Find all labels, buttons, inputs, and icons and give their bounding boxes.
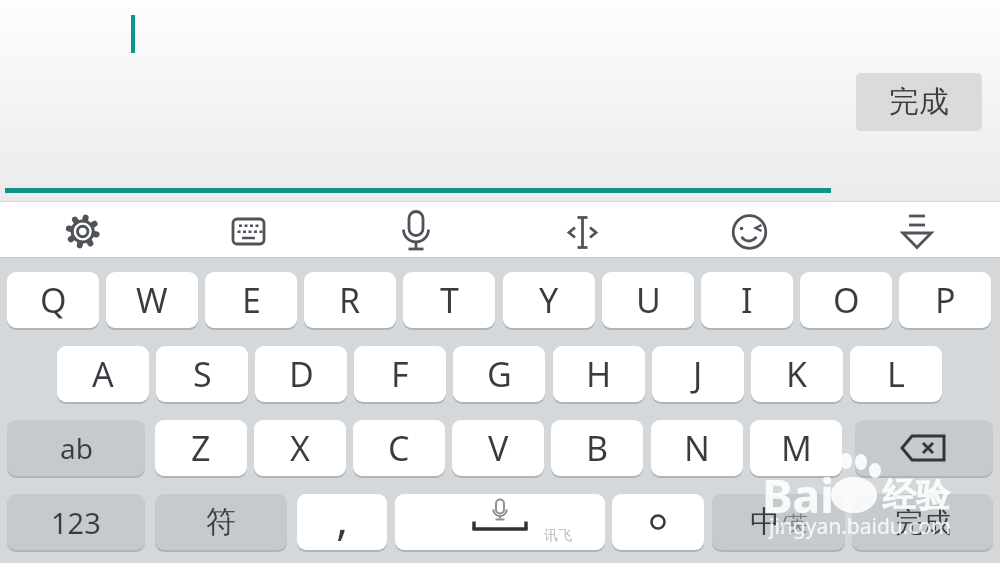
button[interactable]: ,	[297, 494, 387, 550]
button[interactable]: W	[106, 272, 198, 328]
button[interactable]	[612, 494, 704, 550]
button[interactable]: R	[304, 272, 396, 328]
button[interactable]: E	[205, 272, 297, 328]
button[interactable]: X	[254, 420, 346, 476]
staticText: X	[290, 425, 310, 471]
button[interactable]	[855, 420, 993, 476]
button[interactable]: 完成	[856, 73, 982, 131]
staticText: C	[388, 425, 410, 471]
button[interactable]: 完成	[852, 494, 993, 550]
button[interactable]	[332, 202, 499, 258]
button[interactable]: U	[602, 272, 694, 328]
staticText: N	[684, 425, 710, 471]
staticText: Z	[191, 425, 211, 471]
button[interactable]: J	[652, 346, 744, 402]
staticText: O	[833, 277, 860, 323]
staticText: W	[136, 277, 168, 323]
button[interactable]: F	[354, 346, 446, 402]
staticText: G	[487, 351, 512, 397]
button[interactable]: ab	[7, 420, 145, 476]
button[interactable]: S	[156, 346, 248, 402]
staticText: 讯飞	[544, 527, 572, 545]
staticText: I	[741, 277, 753, 323]
button[interactable]: T	[403, 272, 495, 328]
button[interactable]: A	[57, 346, 149, 402]
button[interactable]: H	[553, 346, 645, 402]
staticText: D	[289, 351, 314, 397]
staticText: 经验	[882, 474, 950, 517]
button[interactable]: O	[800, 272, 892, 328]
staticText: T	[440, 277, 459, 323]
staticText: J	[693, 351, 703, 397]
staticText: L	[887, 351, 905, 397]
button[interactable]	[0, 202, 166, 258]
staticText: A	[92, 351, 114, 397]
button[interactable]: K	[751, 346, 843, 402]
staticText: /英	[780, 509, 808, 536]
button[interactable]	[166, 202, 332, 258]
button[interactable]: N	[651, 420, 743, 476]
staticText: S	[193, 351, 212, 397]
staticText: Q	[40, 277, 67, 323]
staticText: V	[488, 425, 509, 471]
staticText: F	[391, 351, 409, 397]
staticText: 完成	[889, 83, 949, 121]
button[interactable]: 中	[712, 494, 845, 550]
button[interactable]: Z	[155, 420, 247, 476]
button[interactable]: D	[255, 346, 347, 402]
button[interactable]	[833, 202, 1000, 258]
button[interactable]: Y	[503, 272, 595, 328]
staticText: 中	[750, 503, 780, 541]
staticText: U	[636, 277, 661, 323]
staticText: R	[339, 277, 361, 323]
button[interactable]: 123	[7, 494, 145, 550]
button[interactable]: G	[453, 346, 545, 402]
button[interactable]: V	[452, 420, 544, 476]
staticText: Bai	[762, 464, 834, 527]
staticText: B	[586, 425, 609, 471]
staticText: K	[786, 351, 808, 397]
button[interactable]: B	[551, 420, 643, 476]
button[interactable]: C	[353, 420, 445, 476]
staticText: 123	[51, 503, 101, 542]
staticText: M	[781, 425, 812, 471]
staticText: jingyan.baidu.com	[769, 512, 951, 541]
staticText: 完成	[895, 505, 951, 540]
staticText: Y	[539, 277, 559, 323]
button[interactable]: M	[750, 420, 842, 476]
button[interactable]: 讯飞	[395, 494, 605, 550]
button[interactable]	[499, 202, 666, 258]
button[interactable]: L	[850, 346, 942, 402]
staticText: ,	[336, 494, 349, 542]
staticText: H	[586, 351, 612, 397]
staticText: E	[242, 277, 261, 323]
button[interactable]	[666, 202, 833, 258]
button[interactable]: I	[701, 272, 793, 328]
staticText: 符	[206, 503, 236, 541]
button[interactable]: Q	[7, 272, 99, 328]
staticText: P	[935, 277, 956, 323]
button[interactable]: P	[899, 272, 991, 328]
staticText: ab	[60, 429, 93, 467]
button[interactable]: 符	[155, 494, 287, 550]
